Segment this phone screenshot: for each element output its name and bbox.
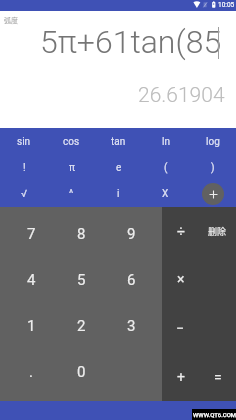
staticText: ( <box>164 162 168 174</box>
button[interactable]: 2 <box>56 303 106 349</box>
staticText: 3 <box>127 317 136 335</box>
staticText: 5 <box>77 271 86 289</box>
staticText: e <box>116 162 122 174</box>
staticText: . <box>29 363 33 381</box>
button[interactable]: √ <box>0 181 48 207</box>
button[interactable]: × <box>162 255 199 303</box>
staticText: 26.61904 <box>138 83 225 108</box>
button[interactable]: 1 <box>6 303 56 349</box>
staticText: 7 <box>27 225 36 243</box>
staticText: sin <box>17 136 31 148</box>
staticText: 9 <box>127 225 136 243</box>
button[interactable]: Add, show more functions <box>202 183 224 205</box>
button[interactable]: ln <box>142 128 189 155</box>
button[interactable]: π <box>48 155 95 181</box>
button[interactable]: cos <box>48 128 95 155</box>
staticText: − <box>176 320 185 336</box>
staticText: ) <box>211 162 215 174</box>
button[interactable]: tan <box>95 128 142 155</box>
button[interactable]: − <box>162 303 199 352</box>
staticText: log <box>206 136 220 148</box>
staticText: cos <box>63 136 80 148</box>
staticText: ln <box>162 136 170 148</box>
staticText: 删除 <box>208 225 227 238</box>
button[interactable]: . <box>6 349 56 395</box>
staticText: 6 <box>127 271 136 289</box>
button[interactable]: ( <box>142 155 189 181</box>
staticText: 弧度 <box>4 15 18 25</box>
button[interactable]: ) <box>189 155 236 181</box>
button[interactable]: ÷ <box>162 207 199 255</box>
staticText: = <box>214 369 222 385</box>
button[interactable]: 5 <box>56 257 106 303</box>
button[interactable] <box>189 181 236 207</box>
button[interactable]: i <box>95 181 142 207</box>
button[interactable]: e <box>95 155 142 181</box>
button[interactable]: 8 <box>56 210 106 257</box>
staticText: 8 <box>77 225 86 243</box>
button[interactable]: 0 <box>56 349 106 395</box>
button[interactable]: 6 <box>106 257 156 303</box>
staticText: + <box>177 369 185 385</box>
staticText: i <box>117 188 120 200</box>
button[interactable]: = <box>199 352 236 401</box>
staticText: × <box>177 271 185 287</box>
button[interactable]: 9 <box>106 210 156 257</box>
button[interactable]: ^ <box>48 181 95 207</box>
staticText: tan <box>111 136 126 148</box>
button[interactable]: sin <box>0 128 48 155</box>
button[interactable]: log <box>189 128 236 155</box>
button[interactable]: 3 <box>106 303 156 349</box>
staticText: √ <box>21 188 27 200</box>
staticText: 5π+61tan(85 <box>40 23 222 61</box>
staticText: 10:05 <box>218 1 235 9</box>
staticText: ^ <box>69 188 74 200</box>
button[interactable]: 删除 <box>199 207 236 255</box>
staticText: 2 <box>77 317 86 335</box>
button[interactable]: + <box>162 352 199 401</box>
button[interactable]: 7 <box>6 210 56 257</box>
staticText: X <box>162 188 169 200</box>
button[interactable]: ! <box>0 155 48 181</box>
button[interactable]: 4 <box>6 257 56 303</box>
staticText: ÷ <box>177 223 185 239</box>
button[interactable]: X <box>142 181 189 207</box>
staticText: ! <box>23 162 26 174</box>
staticText: π <box>69 162 75 174</box>
staticText: 1 <box>27 317 36 335</box>
staticText: 4 <box>27 271 36 289</box>
staticText: 0 <box>77 363 86 381</box>
staticText: WWW.QT6.COM <box>193 411 236 418</box>
